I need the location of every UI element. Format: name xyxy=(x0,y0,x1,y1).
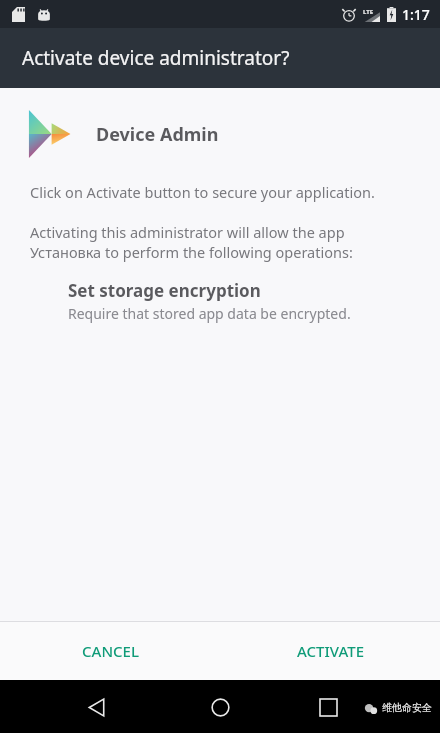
staticText: Activating this administrator will allow… xyxy=(30,222,353,263)
staticText: ACTIVATE xyxy=(297,641,364,661)
staticText: Activate device administrator? xyxy=(22,45,290,71)
button[interactable]: Home xyxy=(196,683,244,731)
staticText: LTE xyxy=(363,8,374,16)
staticText: Require that stored app data be encrypte… xyxy=(68,304,351,323)
button[interactable]: Back xyxy=(72,683,120,731)
staticText: Device Admin xyxy=(96,122,219,147)
staticText: Click on Activate button to secure your … xyxy=(30,182,375,202)
staticText: CANCEL xyxy=(82,641,139,661)
button[interactable]: CANCEL xyxy=(0,622,220,680)
staticText: Set storage encryption xyxy=(68,279,261,302)
staticText: 1:17 xyxy=(402,5,430,24)
button[interactable]: ACTIVATE xyxy=(220,622,440,680)
staticText: 维他命安全 xyxy=(382,701,432,714)
button[interactable]: Recent apps xyxy=(304,683,352,731)
